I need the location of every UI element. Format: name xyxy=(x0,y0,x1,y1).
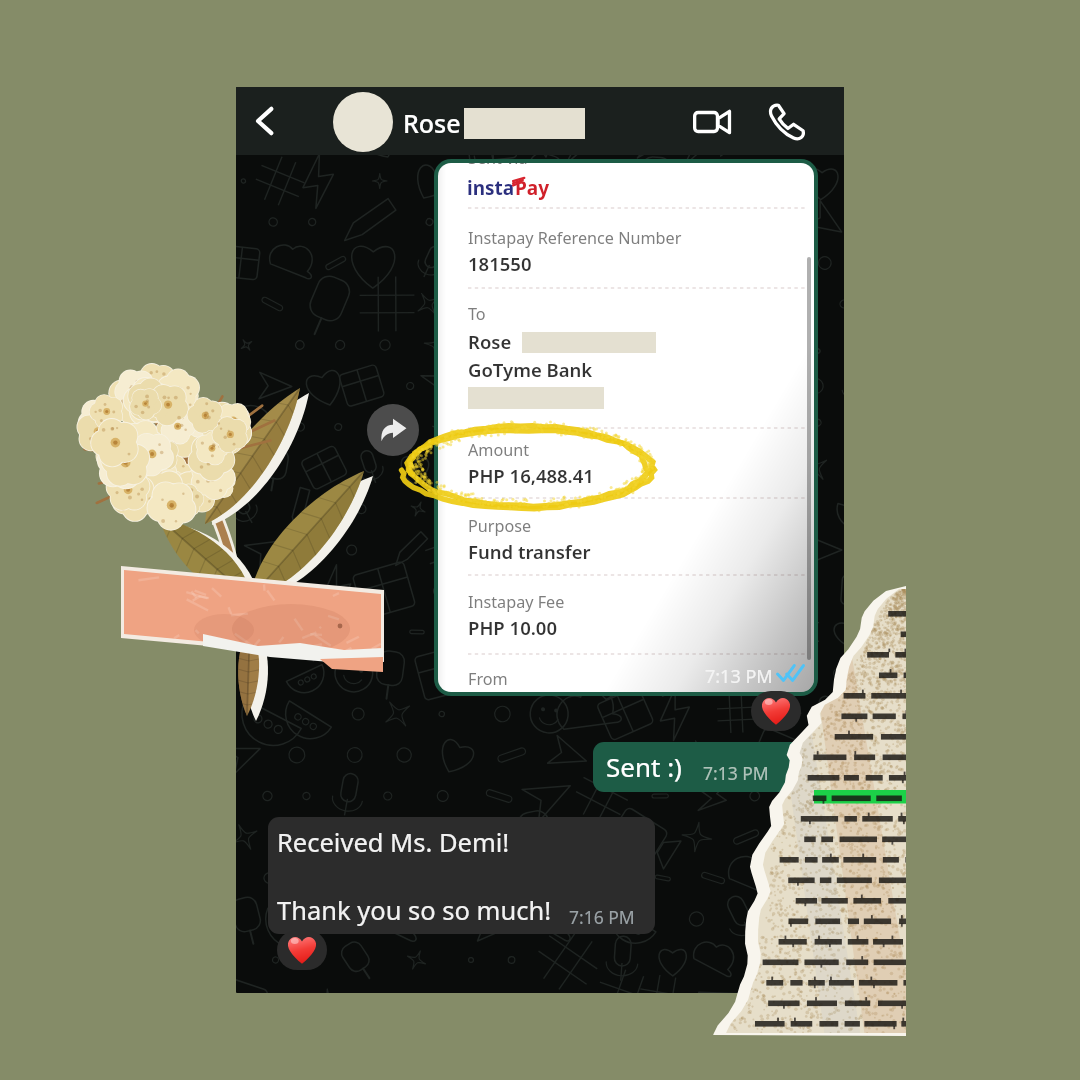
button[interactable]: Forward xyxy=(367,404,419,456)
staticText: Rose xyxy=(403,106,461,140)
staticText: Thank you so so much! xyxy=(277,893,552,928)
button[interactable]: Sent via xyxy=(434,159,818,696)
button[interactable]: Profile photo xyxy=(333,92,393,152)
staticText: Sent :) xyxy=(606,749,682,784)
staticText: Instapay Reference Number xyxy=(468,227,682,249)
staticText: 181550 xyxy=(468,251,532,276)
staticText: 7:16 PM xyxy=(569,905,635,929)
staticText: PHP 16,488.41 xyxy=(468,463,594,488)
staticText: 7:13 PM xyxy=(703,761,769,785)
staticText: Received Ms. Demi! xyxy=(277,825,510,860)
staticText: Sent via xyxy=(468,163,528,169)
staticText: Pay xyxy=(515,175,550,201)
staticText: Rose xyxy=(468,329,512,354)
button[interactable]: Sent :) xyxy=(593,742,844,792)
staticText: Amount xyxy=(468,439,530,461)
staticText: PHP 10.00 xyxy=(468,615,557,640)
staticText: Fund transfer xyxy=(468,539,591,564)
staticText: Purpose xyxy=(468,515,532,537)
button[interactable]: Received Ms. Demi! xyxy=(268,817,655,934)
staticText: From xyxy=(468,668,508,690)
staticText: GoTyme Bank xyxy=(468,357,593,382)
button[interactable]: Heart reaction xyxy=(277,930,327,970)
staticText: insta xyxy=(467,175,515,201)
button[interactable]: Voice call xyxy=(761,97,811,147)
staticText: 7:13 PM xyxy=(705,664,773,689)
button[interactable]: Back xyxy=(240,96,290,146)
staticText: Instapay Fee xyxy=(468,591,565,613)
button[interactable]: Heart reaction xyxy=(751,691,801,731)
button[interactable]: Video call xyxy=(687,97,737,147)
staticText: To xyxy=(468,303,486,325)
